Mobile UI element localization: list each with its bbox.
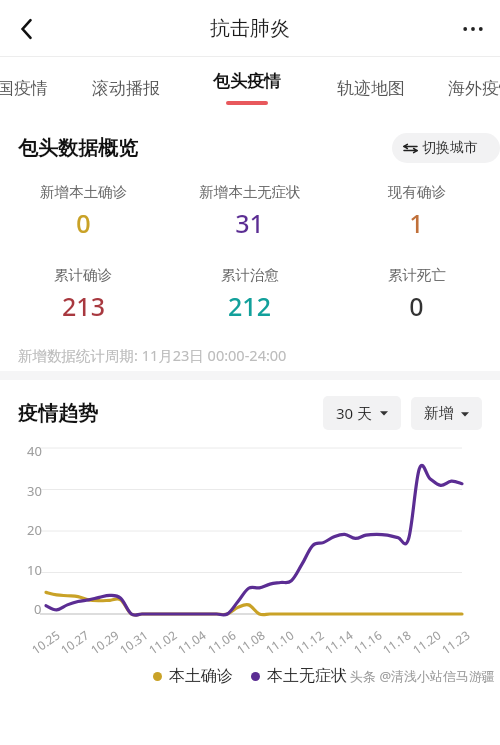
staticText: 11.02 — [145, 627, 180, 657]
button[interactable]: 本土无症状 — [251, 666, 347, 686]
staticText: 11.14 — [321, 627, 356, 657]
staticText: 头条 @清浅小站信马游疆 — [350, 667, 496, 685]
staticText: 10 — [27, 561, 42, 575]
button[interactable]: 累计确诊 — [0, 266, 166, 323]
staticText: 10.27 — [57, 627, 92, 657]
staticText: 新增本土无症状 — [199, 183, 301, 201]
staticText: 新增数据统计周期: 11月23日 00:00-24:00 — [18, 345, 287, 365]
staticText: 11.10 — [262, 627, 297, 657]
staticText: 累计确诊 — [54, 266, 112, 284]
button[interactable]: 滚动播报 — [82, 68, 170, 109]
button[interactable]: 30 天 — [323, 396, 401, 430]
staticText: 11.12 — [292, 627, 327, 657]
staticText: 11.16 — [350, 627, 385, 657]
staticText: 轨迹地图 — [337, 78, 405, 99]
staticText: 40 — [27, 442, 42, 456]
staticText: 11.23 — [438, 627, 473, 657]
staticText: 新增 — [424, 404, 454, 423]
staticText: 0 — [409, 289, 424, 323]
staticText: 11.20 — [409, 627, 444, 657]
staticText: 滚动播报 — [92, 78, 160, 99]
staticText: 本土确诊 — [169, 666, 233, 686]
staticText: 10.25 — [28, 627, 63, 657]
staticText: 10.31 — [116, 627, 151, 657]
button[interactable]: 切换城市 — [392, 133, 500, 163]
staticText: 累计治愈 — [221, 266, 279, 284]
staticText: 10.29 — [87, 627, 122, 657]
button[interactable]: More options — [446, 2, 500, 56]
staticText: 31 — [235, 206, 264, 240]
staticText: 30 — [27, 482, 42, 496]
staticText: 213 — [62, 289, 105, 323]
staticText: 累计死亡 — [388, 266, 446, 284]
button[interactable]: Back — [0, 2, 54, 56]
button[interactable]: 新增本土确诊 — [0, 183, 166, 240]
staticText: 包头疫情 — [213, 71, 281, 92]
staticText: 30 天 — [336, 403, 373, 423]
staticText: 抗击肺炎 — [210, 16, 290, 41]
staticText: 新增本土确诊 — [40, 183, 127, 201]
staticText: 海外疫情 — [448, 78, 500, 99]
button[interactable]: 本土确诊 — [153, 666, 233, 686]
staticText: 212 — [228, 289, 271, 323]
staticText: 疫情趋势 — [18, 401, 98, 426]
staticText: 1 — [409, 206, 424, 240]
button[interactable]: 新增 — [411, 397, 482, 430]
staticText: 11.08 — [233, 627, 268, 657]
button[interactable]: 累计死亡 — [333, 266, 500, 323]
staticText: 本土无症状 — [267, 666, 347, 686]
staticText: 现有确诊 — [388, 183, 446, 201]
staticText: 11.04 — [174, 627, 209, 657]
button[interactable]: 新增本土无症状 — [166, 183, 333, 240]
button[interactable]: 现有确诊 — [333, 183, 500, 240]
staticText: 包头数据概览 — [18, 136, 138, 161]
staticText: 0 — [76, 206, 91, 240]
staticText: 切换城市 — [422, 139, 478, 157]
staticText: 20 — [27, 521, 42, 535]
staticText: 全国疫情 — [0, 78, 48, 99]
staticText: 11.06 — [204, 627, 239, 657]
button[interactable]: 包头疫情 — [205, 71, 289, 105]
staticText: 0 — [34, 600, 42, 614]
button[interactable]: 海外疫情 — [448, 68, 500, 109]
button[interactable]: 全国疫情 — [0, 68, 62, 109]
button[interactable]: 轨迹地图 — [327, 68, 415, 109]
staticText: 11.18 — [379, 627, 414, 657]
button[interactable]: 累计治愈 — [166, 266, 333, 323]
